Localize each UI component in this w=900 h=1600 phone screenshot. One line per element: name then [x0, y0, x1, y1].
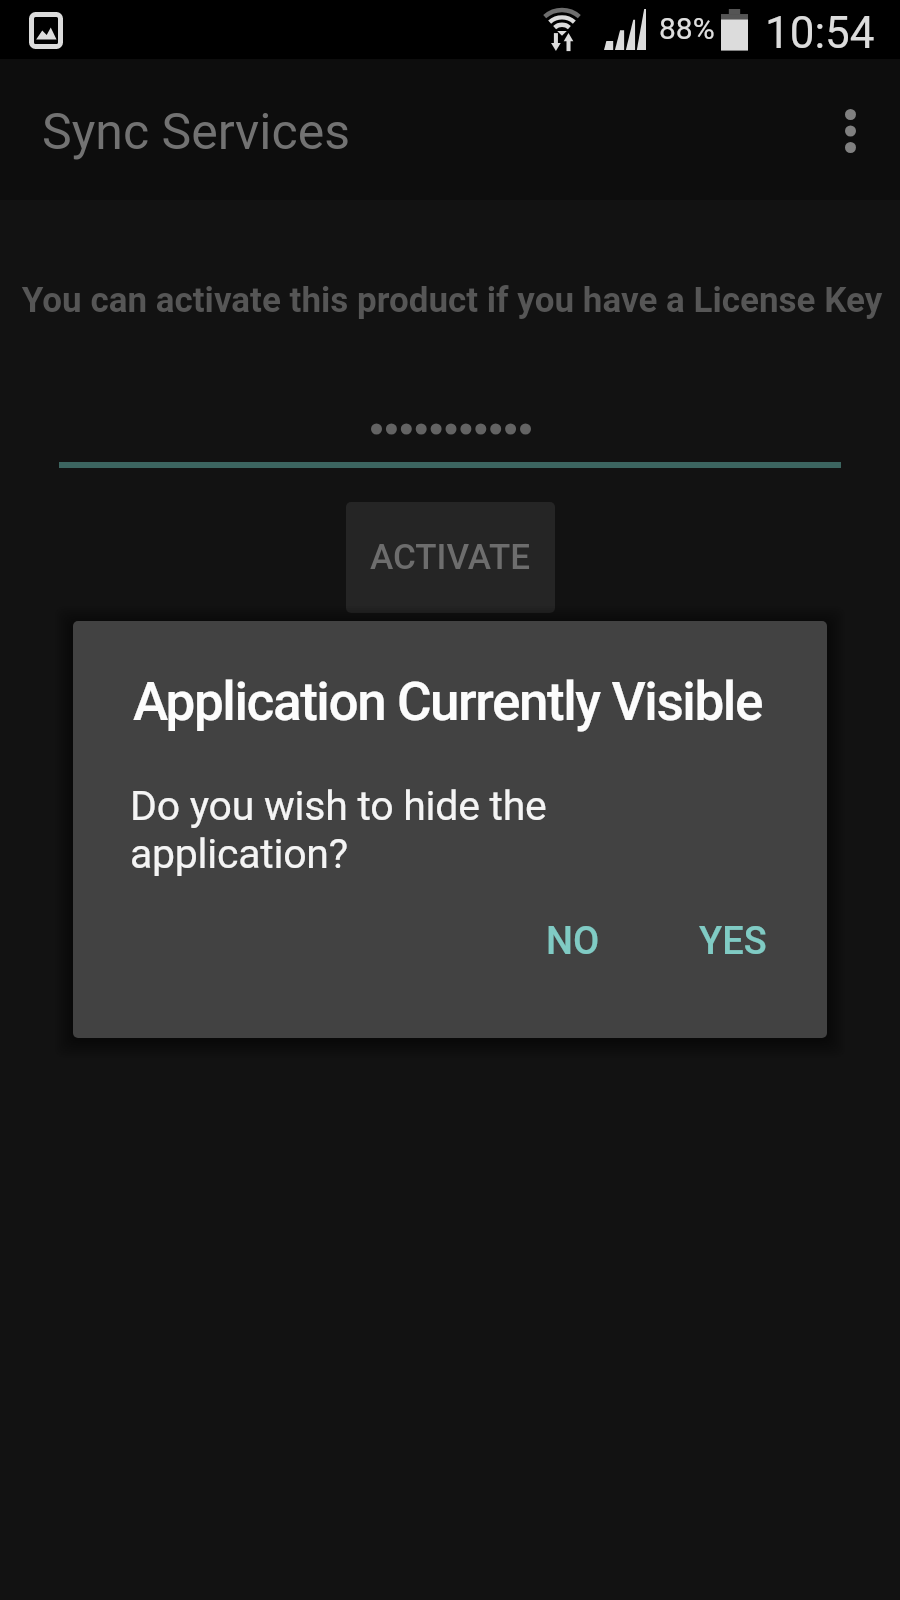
staticText: NO	[546, 919, 600, 964]
staticText: 88%	[659, 11, 715, 46]
button[interactable]: License key	[59, 380, 841, 468]
button[interactable]: YES	[673, 901, 793, 982]
staticText: Do you wish to hide the application?	[130, 782, 580, 878]
staticText: Sync Services	[42, 103, 350, 162]
staticText: ACTIVATE	[370, 537, 531, 578]
button[interactable]: ACTIVATE	[346, 502, 555, 613]
button[interactable]: More options	[800, 59, 900, 200]
staticText: YES	[699, 919, 767, 964]
button[interactable]: NO	[520, 901, 626, 982]
staticText: 10:54	[765, 7, 875, 59]
staticText: Application Currently Visible	[133, 671, 762, 733]
staticText: You can activate this product if you hav…	[2, 280, 900, 321]
